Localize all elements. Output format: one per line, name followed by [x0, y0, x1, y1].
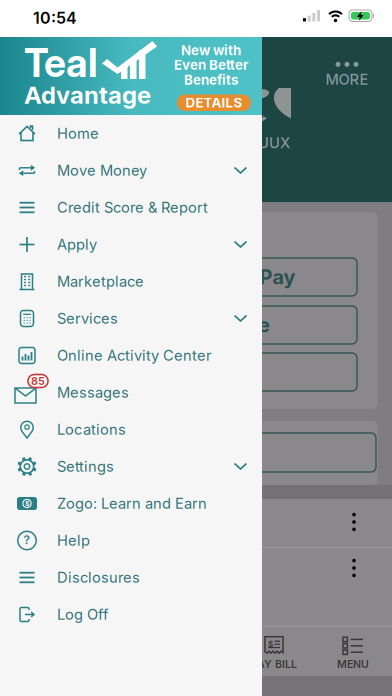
staticText: MORE — [325, 71, 368, 88]
staticText: Settings — [57, 458, 114, 475]
button[interactable]: ? — [0, 522, 262, 559]
button[interactable]: Settings — [0, 448, 262, 485]
staticText: Make Purchase — [119, 313, 270, 337]
button[interactable]: Services — [0, 300, 262, 337]
staticText: Zogo: Learn and Earn — [57, 495, 207, 512]
staticText: Credit Score & Report — [57, 199, 208, 216]
button[interactable]: Credit Score & Report — [0, 189, 262, 226]
staticText: Marketplace — [57, 273, 144, 290]
staticText: Teal — [24, 40, 98, 86]
staticText: $ — [268, 639, 273, 649]
staticText: New with — [181, 43, 241, 58]
button[interactable]: Log Off — [0, 596, 262, 633]
button[interactable]: Add Accounts to Pay — [32, 258, 357, 296]
button[interactable]: Marketplace — [0, 263, 262, 300]
staticText: Home — [57, 125, 99, 142]
button[interactable]: Move Money — [0, 152, 262, 189]
button[interactable]: Disclosures — [0, 559, 262, 596]
button[interactable]: $ — [0, 485, 262, 522]
button[interactable]: Home — [0, 115, 262, 152]
button[interactable]: MENU — [317, 630, 389, 676]
staticText: Apply — [57, 236, 97, 253]
staticText: UUX — [258, 134, 290, 152]
staticText: Advantage — [24, 81, 151, 109]
staticText: Disclosures — [57, 569, 140, 586]
staticText: 85 — [31, 375, 45, 387]
button[interactable]: $ — [238, 630, 310, 676]
staticText: Locations — [57, 421, 126, 438]
staticText: 10:54 — [33, 9, 77, 27]
button[interactable]: Account options — [339, 553, 369, 583]
staticText: Add Accounts to Pay — [93, 265, 295, 289]
staticText: Help — [57, 532, 90, 549]
staticText: Benefits — [184, 72, 238, 88]
staticText: Services — [57, 310, 118, 327]
button[interactable]: Account options — [339, 507, 369, 537]
staticText: Online Activity Center — [57, 347, 212, 364]
button[interactable]: Apply — [0, 226, 262, 263]
staticText: Even Better — [174, 57, 248, 73]
button[interactable]: Locations — [0, 411, 262, 448]
staticText: DETAILS — [185, 95, 242, 111]
staticText: $ — [25, 500, 29, 507]
staticText: Messages — [57, 384, 129, 401]
staticText: Move Money — [57, 162, 147, 179]
staticText: ? — [23, 533, 30, 547]
staticText: Pay a Bill — [151, 360, 237, 384]
button[interactable]: Make a payment — [20, 433, 376, 472]
button[interactable]: Online Activity Center — [0, 337, 262, 374]
staticText: MENU — [337, 658, 369, 670]
staticText: PAY BILL — [251, 658, 297, 670]
button[interactable]: 85 — [0, 374, 262, 411]
button[interactable]: Pay a Bill — [32, 353, 357, 391]
staticText: Log Off — [57, 606, 108, 623]
button[interactable]: More — [315, 56, 379, 94]
button[interactable]: Make Purchase — [32, 306, 357, 344]
button[interactable]: DETAILS — [177, 94, 251, 111]
